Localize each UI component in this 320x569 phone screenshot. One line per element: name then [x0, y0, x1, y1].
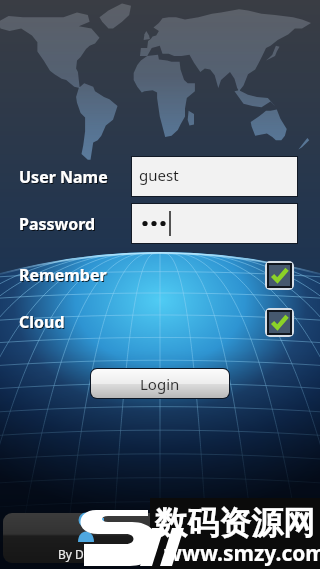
button[interactable]: guest — [132, 157, 297, 196]
staticText: Cloud — [19, 311, 65, 333]
staticText: Password — [20, 214, 97, 236]
staticText: www.smzy.com — [164, 539, 320, 568]
staticText: Password — [19, 213, 96, 235]
staticText: By DeVice — [58, 546, 114, 562]
staticText: 数码资源网 — [155, 503, 315, 543]
button[interactable]: Login — [91, 369, 229, 398]
staticText: Remember — [19, 264, 107, 286]
button[interactable] — [3, 513, 317, 563]
staticText: guest — [139, 165, 179, 185]
button[interactable]: Password — [132, 204, 297, 243]
staticText: Remember — [20, 265, 108, 287]
staticText: User Name — [20, 167, 109, 189]
button[interactable]: Remember — [269, 265, 290, 286]
staticText: Login — [140, 374, 180, 394]
staticText: Cloud — [20, 312, 66, 334]
button[interactable]: Cloud — [269, 312, 290, 333]
staticText: User Name — [19, 166, 108, 188]
